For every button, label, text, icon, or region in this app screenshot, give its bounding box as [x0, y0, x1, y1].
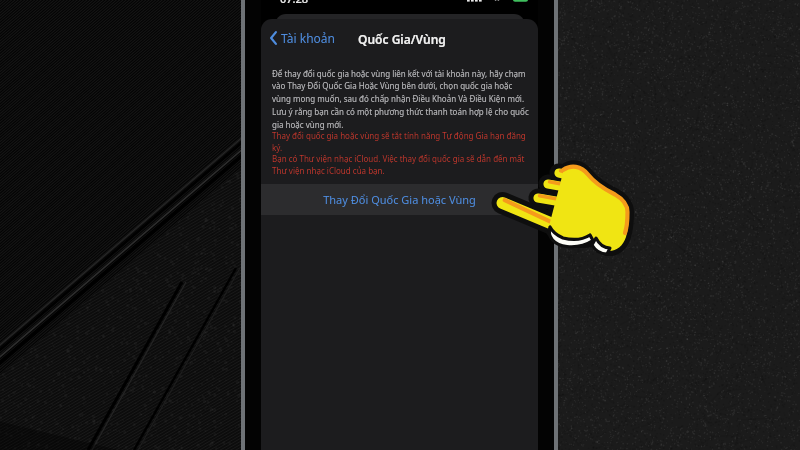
staticText: Quốc Gia/Vùng: [358, 31, 446, 47]
staticText: Để thay đổi quốc gia hoặc vùng liên kết …: [272, 68, 529, 130]
button[interactable]: Thay Đổi Quốc Gia hoặc Vùng: [261, 184, 538, 215]
staticText: 07:28: [280, 0, 309, 6]
staticText: Thay Đổi Quốc Gia hoặc Vùng: [323, 192, 476, 207]
button[interactable]: Tài khoản: [268, 27, 338, 49]
other: Tap here: [493, 162, 641, 260]
staticText: Tài khoản: [281, 30, 336, 46]
staticText: Thay đổi quốc gia hoặc vùng sẽ tắt tính …: [272, 130, 529, 153]
staticText: Bạn có Thư viện nhạc iCloud. Việc thay đ…: [272, 153, 529, 176]
